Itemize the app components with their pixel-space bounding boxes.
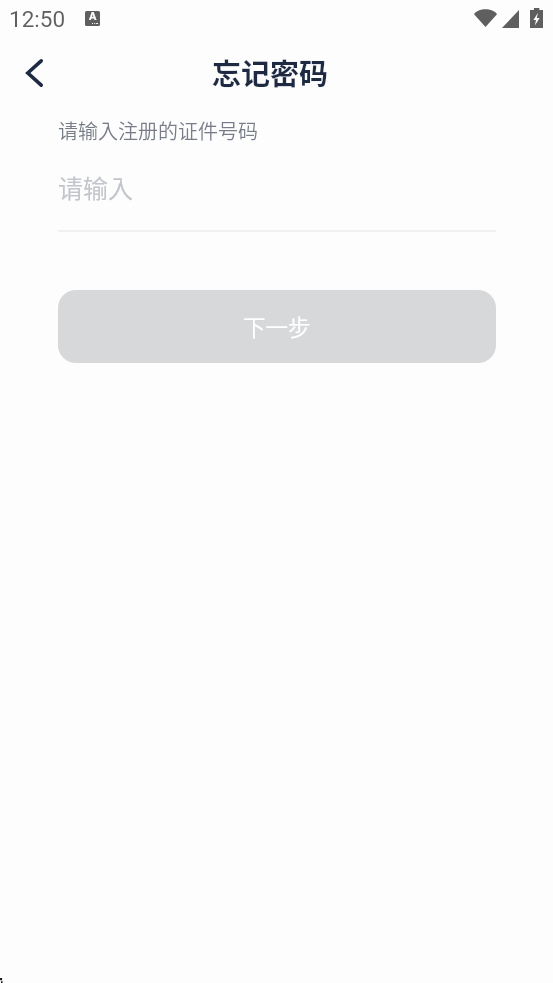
staticText: 请输入注册的证件号码 [58, 116, 258, 145]
button[interactable]: 请输入 [58, 161, 496, 232]
staticText: 忘记密码 [212, 51, 329, 93]
button[interactable]: 下一步 [58, 290, 496, 363]
button[interactable]: Back [7, 46, 61, 100]
staticText: A [89, 11, 97, 23]
staticText: 请输入 [58, 169, 134, 205]
staticText: 下一步 [243, 310, 311, 343]
staticText: 12:50 [9, 6, 66, 32]
